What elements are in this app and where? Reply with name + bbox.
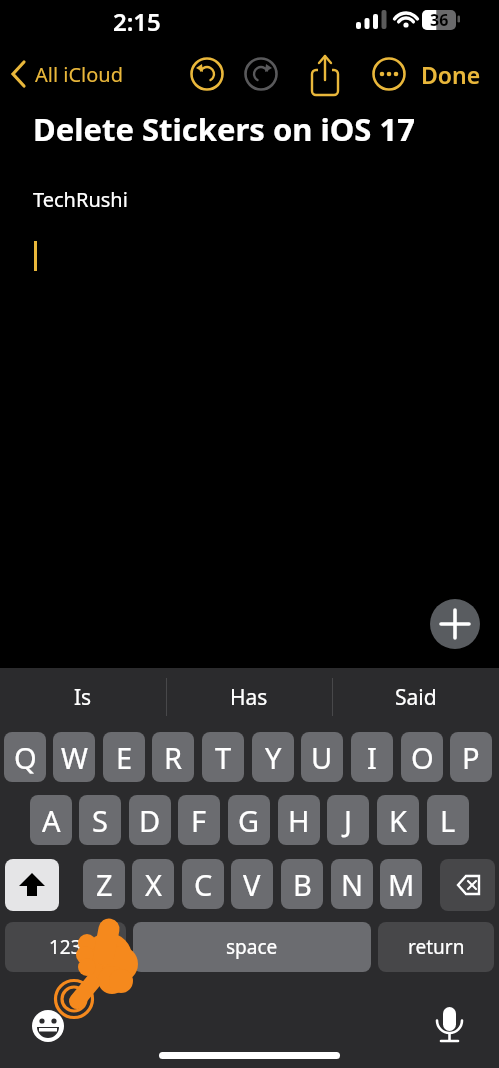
staticText: M	[388, 865, 415, 904]
staticText: N	[341, 865, 364, 904]
staticText: Said	[395, 683, 437, 712]
button[interactable]	[5, 859, 59, 911]
staticText: W	[61, 738, 88, 777]
button[interactable]: Y	[252, 732, 294, 782]
button[interactable]: return	[378, 922, 494, 972]
staticText: A	[42, 801, 61, 840]
button[interactable]: F	[178, 795, 220, 845]
staticText: X	[145, 865, 162, 904]
button[interactable]: 123	[5, 922, 126, 972]
button[interactable]: Z	[83, 859, 125, 909]
staticText: Has	[230, 683, 268, 712]
button[interactable]: S	[79, 795, 121, 845]
staticText: P	[462, 738, 480, 777]
staticText: Q	[14, 738, 37, 777]
staticText: I	[367, 738, 377, 777]
button[interactable]: Q	[4, 732, 46, 782]
staticText: Y	[265, 738, 282, 777]
staticText: G	[238, 801, 260, 840]
staticText: Z	[96, 865, 113, 904]
button[interactable]: R	[152, 732, 194, 782]
staticText: All iCloud	[35, 61, 124, 88]
staticText: F	[191, 801, 207, 840]
button[interactable]	[430, 599, 480, 649]
button[interactable]: W	[53, 732, 95, 782]
staticText: 123	[49, 934, 82, 960]
staticText: T	[215, 738, 232, 777]
staticText: D	[139, 801, 161, 840]
button[interactable]: N	[331, 859, 373, 909]
button[interactable]: X	[132, 859, 174, 909]
staticText: R	[164, 738, 183, 777]
button[interactable]: L	[427, 795, 469, 845]
staticText: U	[311, 738, 333, 777]
button[interactable]: T	[202, 732, 244, 782]
staticText: TechRushi	[33, 186, 128, 210]
staticText: V	[243, 865, 261, 904]
button[interactable]: I	[351, 732, 393, 782]
button[interactable]: M	[380, 859, 422, 909]
staticText: K	[389, 801, 407, 840]
staticText: E	[116, 738, 133, 777]
staticText: Is	[74, 683, 92, 712]
button[interactable]: Done	[415, 58, 487, 90]
button[interactable]: G	[228, 795, 270, 845]
button[interactable]: space	[133, 922, 371, 972]
staticText: L	[440, 801, 456, 840]
button[interactable]: P	[450, 732, 492, 782]
button[interactable]: C	[182, 859, 224, 909]
button[interactable]: V	[231, 859, 273, 909]
button[interactable]: All iCloud	[35, 60, 155, 88]
button[interactable]: A	[30, 795, 72, 845]
staticText: B	[293, 865, 312, 904]
button[interactable]: Said	[332, 668, 499, 726]
button[interactable]: E	[103, 732, 145, 782]
staticText: H	[288, 801, 310, 840]
staticText: Delete Stickers on iOS 17	[33, 108, 415, 144]
staticText: 36	[430, 9, 449, 31]
button[interactable]: O	[401, 732, 443, 782]
button[interactable]: Is	[0, 668, 166, 726]
staticText: O	[411, 738, 434, 777]
button[interactable]: H	[278, 795, 320, 845]
button[interactable]: D	[129, 795, 171, 845]
button[interactable]: Has	[166, 668, 332, 726]
staticText: 2:15	[113, 5, 161, 35]
button[interactable]: B	[281, 859, 323, 909]
staticText: return	[408, 934, 465, 960]
staticText: J	[344, 801, 352, 840]
button[interactable]: J	[327, 795, 369, 845]
button[interactable]: U	[301, 732, 343, 782]
button[interactable]	[440, 859, 495, 911]
staticText: space	[226, 934, 278, 960]
staticText: C	[194, 865, 213, 904]
button[interactable]: K	[377, 795, 419, 845]
staticText: Done	[421, 59, 481, 90]
staticText: S	[92, 801, 108, 840]
